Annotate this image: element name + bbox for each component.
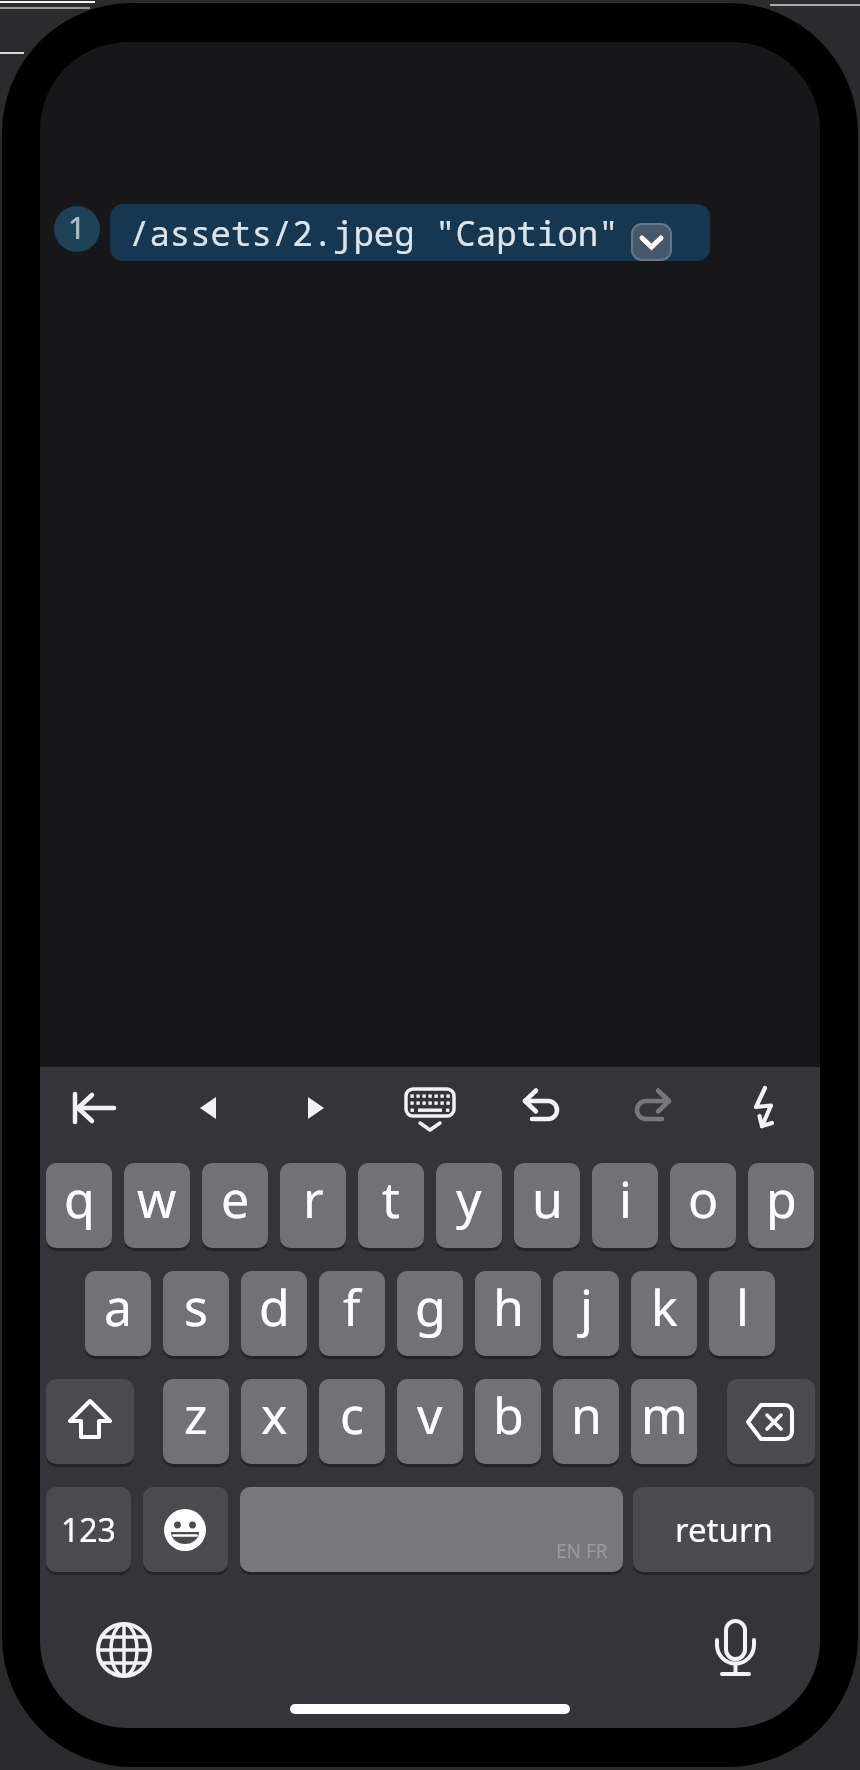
- button[interactable]: [395, 1073, 465, 1143]
- button[interactable]: t: [358, 1163, 424, 1248]
- staticText: y: [456, 1165, 482, 1233]
- button[interactable]: j: [553, 1271, 619, 1356]
- button[interactable]: g: [397, 1271, 463, 1356]
- button[interactable]: [46, 1379, 134, 1464]
- button[interactable]: [173, 1073, 243, 1143]
- staticText: s: [184, 1273, 208, 1341]
- button[interactable]: z: [163, 1379, 229, 1464]
- button[interactable]: v: [397, 1379, 463, 1464]
- button[interactable]: [700, 1612, 770, 1682]
- button[interactable]: a: [85, 1271, 151, 1356]
- staticText: r: [303, 1165, 324, 1233]
- button[interactable]: [89, 1615, 159, 1685]
- button[interactable]: /assets/2.jpeg "Caption": [110, 204, 710, 261]
- staticText: q: [64, 1165, 95, 1233]
- staticText: b: [493, 1381, 524, 1449]
- button[interactable]: [143, 1487, 228, 1572]
- button[interactable]: k: [631, 1271, 697, 1356]
- staticText: w: [137, 1165, 177, 1233]
- button[interactable]: [58, 1073, 128, 1143]
- staticText: t: [382, 1165, 401, 1233]
- staticText: g: [415, 1273, 446, 1341]
- button[interactable]: u: [514, 1163, 580, 1248]
- button[interactable]: [727, 1379, 815, 1464]
- button[interactable]: [631, 223, 672, 261]
- button[interactable]: w: [124, 1163, 190, 1248]
- button[interactable]: i: [592, 1163, 658, 1248]
- button[interactable]: b: [475, 1379, 541, 1464]
- staticText: e: [221, 1165, 250, 1233]
- button[interactable]: return: [633, 1487, 814, 1572]
- staticText: /assets/2.jpeg "Caption": [129, 210, 619, 256]
- button[interactable]: d: [241, 1271, 307, 1356]
- button[interactable]: h: [475, 1271, 541, 1356]
- button[interactable]: c: [319, 1379, 385, 1464]
- staticText: x: [261, 1381, 288, 1449]
- button[interactable]: [728, 1073, 798, 1143]
- staticText: m: [641, 1381, 688, 1449]
- button[interactable]: [281, 1073, 351, 1143]
- staticText: d: [259, 1273, 290, 1341]
- staticText: u: [532, 1165, 563, 1233]
- staticText: p: [766, 1165, 797, 1233]
- staticText: EN FR: [556, 1538, 608, 1564]
- button[interactable]: p: [748, 1163, 814, 1248]
- button[interactable]: e: [202, 1163, 268, 1248]
- staticText: o: [688, 1165, 719, 1233]
- button[interactable]: m: [631, 1379, 697, 1464]
- staticText: h: [493, 1273, 524, 1341]
- staticText: l: [736, 1273, 749, 1341]
- button[interactable]: [618, 1073, 688, 1143]
- staticText: c: [340, 1381, 364, 1449]
- button[interactable]: x: [241, 1379, 307, 1464]
- button[interactable]: [506, 1073, 576, 1143]
- staticText: f: [343, 1273, 361, 1341]
- button[interactable]: 123: [46, 1487, 131, 1572]
- staticText: return: [675, 1507, 773, 1552]
- button[interactable]: y: [436, 1163, 502, 1248]
- staticText: i: [619, 1165, 632, 1233]
- staticText: 123: [61, 1508, 116, 1552]
- staticText: 1: [68, 207, 86, 248]
- button[interactable]: q: [46, 1163, 112, 1248]
- button[interactable]: o: [670, 1163, 736, 1248]
- staticText: k: [651, 1273, 678, 1341]
- staticText: a: [104, 1273, 133, 1341]
- button[interactable]: n: [553, 1379, 619, 1464]
- staticText: n: [571, 1381, 602, 1449]
- staticText: v: [417, 1381, 443, 1449]
- button[interactable]: EN FR: [240, 1487, 623, 1572]
- button[interactable]: r: [280, 1163, 346, 1248]
- button[interactable]: s: [163, 1271, 229, 1356]
- button[interactable]: f: [319, 1271, 385, 1356]
- button[interactable]: l: [709, 1271, 775, 1356]
- staticText: j: [580, 1273, 593, 1341]
- staticText: z: [184, 1381, 208, 1449]
